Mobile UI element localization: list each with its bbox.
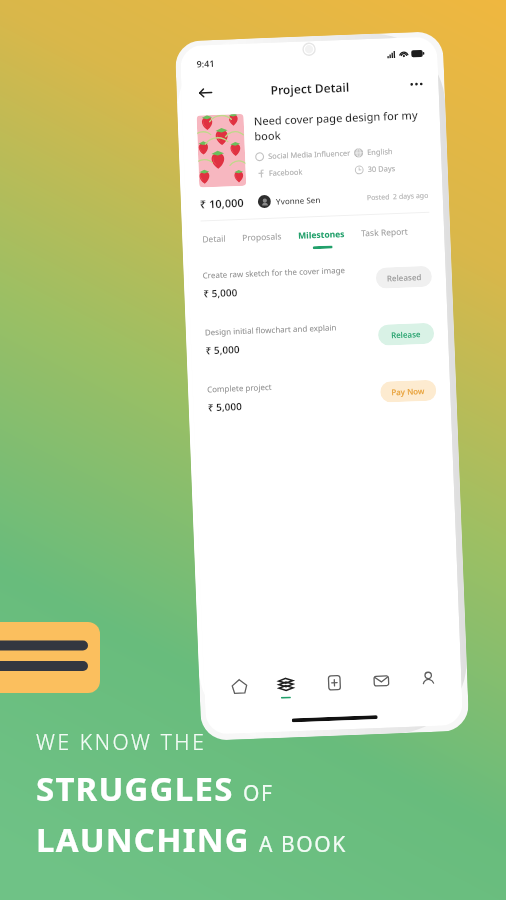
staticText: Milestones — [298, 228, 345, 242]
staticText: Design initial flowchart and explain — [205, 321, 337, 337]
button[interactable]: Projects — [265, 672, 306, 701]
staticText: Social Media Influencer — [268, 148, 351, 161]
button[interactable]: Create raw sketch for the cover image — [188, 260, 446, 301]
staticText: LAUNCHING — [36, 817, 250, 862]
staticText: Released — [387, 271, 422, 283]
staticText: Posted 2 days ago — [367, 191, 429, 203]
staticText: STRUGGLES — [36, 766, 234, 811]
button[interactable]: More options — [404, 72, 429, 97]
staticText: Release — [391, 328, 421, 340]
staticText: 30 Days — [367, 163, 396, 174]
staticText: ₹ 5,000 — [205, 342, 240, 357]
staticText: English — [367, 146, 393, 157]
staticText: Create raw sketch for the cover image — [202, 264, 346, 280]
button[interactable]: Add — [313, 670, 354, 699]
button[interactable]: Released — [375, 266, 432, 289]
button[interactable]: Complete project — [193, 374, 451, 415]
staticText: ₹ 5,000 — [207, 399, 242, 414]
button[interactable]: Task Report — [360, 223, 410, 249]
staticText: 9:41 — [196, 57, 215, 70]
button[interactable]: Milestones — [297, 226, 347, 252]
staticText: Facebook — [269, 167, 303, 178]
staticText: Pay Now — [391, 385, 425, 397]
staticText: A BOOK — [259, 830, 347, 859]
button[interactable]: Home — [218, 674, 259, 703]
staticText: Need cover page design for my book — [253, 107, 426, 143]
button[interactable]: Profile — [407, 666, 448, 696]
staticText: Complete project — [207, 381, 272, 394]
staticText: Proposals — [242, 230, 282, 244]
button[interactable]: Pay Now — [380, 380, 437, 403]
staticText: ₹ 10,000 — [200, 195, 244, 212]
button[interactable]: Back — [191, 79, 218, 106]
button[interactable]: Release — [378, 323, 434, 346]
staticText: Detail — [202, 233, 226, 245]
button[interactable]: Design initial flowchart and explain — [191, 317, 449, 358]
staticText: Project Detail — [270, 79, 350, 98]
staticText: WE KNOW THE — [36, 728, 207, 757]
staticText: Yvonne Sen — [276, 194, 321, 207]
staticText: OF — [243, 779, 274, 808]
button[interactable]: Proposals — [241, 228, 284, 254]
staticText: ₹ 5,000 — [203, 285, 238, 300]
staticText: Task Report — [361, 226, 408, 239]
button[interactable]: Detail — [201, 230, 228, 255]
button[interactable]: Messages — [360, 668, 401, 698]
